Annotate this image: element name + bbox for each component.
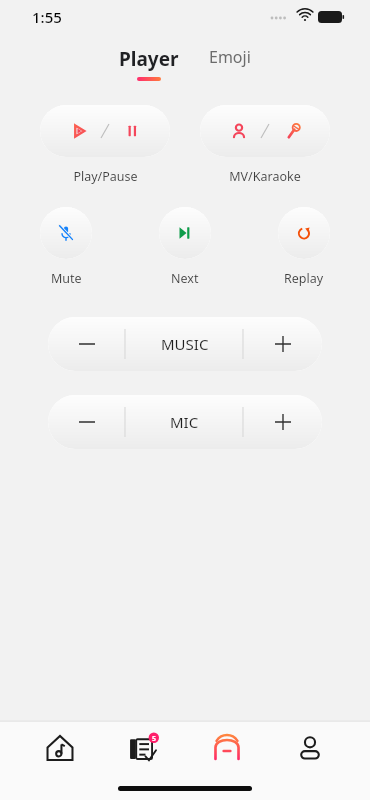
- staticText: Next: [171, 270, 199, 287]
- staticText: Emoji: [209, 46, 251, 68]
- button[interactable]: Play/Pause: [40, 105, 170, 157]
- staticText: MV/Karaoke: [229, 168, 301, 185]
- button[interactable]: Profile: [286, 724, 334, 772]
- button[interactable]: Decrease MUSIC: [48, 317, 125, 371]
- button[interactable]: Player: [111, 46, 187, 81]
- staticText: Mute: [51, 270, 82, 287]
- button[interactable]: Emoji: [201, 46, 259, 68]
- button[interactable]: Increase MIC: [244, 395, 322, 449]
- staticText: 5: [152, 734, 157, 744]
- button[interactable]: Next: [159, 207, 211, 259]
- button[interactable]: Increase MUSIC: [244, 317, 322, 371]
- button[interactable]: Devices: [203, 724, 251, 772]
- staticText: MUSIC: [161, 334, 209, 354]
- staticText: MIC: [170, 412, 199, 432]
- button[interactable]: Mute: [40, 207, 92, 259]
- staticText: Player: [119, 46, 179, 72]
- button[interactable]: Decrease MIC: [48, 395, 125, 449]
- staticText: Play/Pause: [73, 168, 138, 185]
- button[interactable]: Replay: [278, 207, 330, 259]
- button[interactable]: MV/Karaoke: [200, 105, 330, 157]
- staticText: 1:55: [32, 7, 62, 27]
- staticText: Replay: [284, 270, 324, 287]
- button[interactable]: Tasks, 5 new: [119, 724, 167, 772]
- button[interactable]: Home: [36, 724, 84, 772]
